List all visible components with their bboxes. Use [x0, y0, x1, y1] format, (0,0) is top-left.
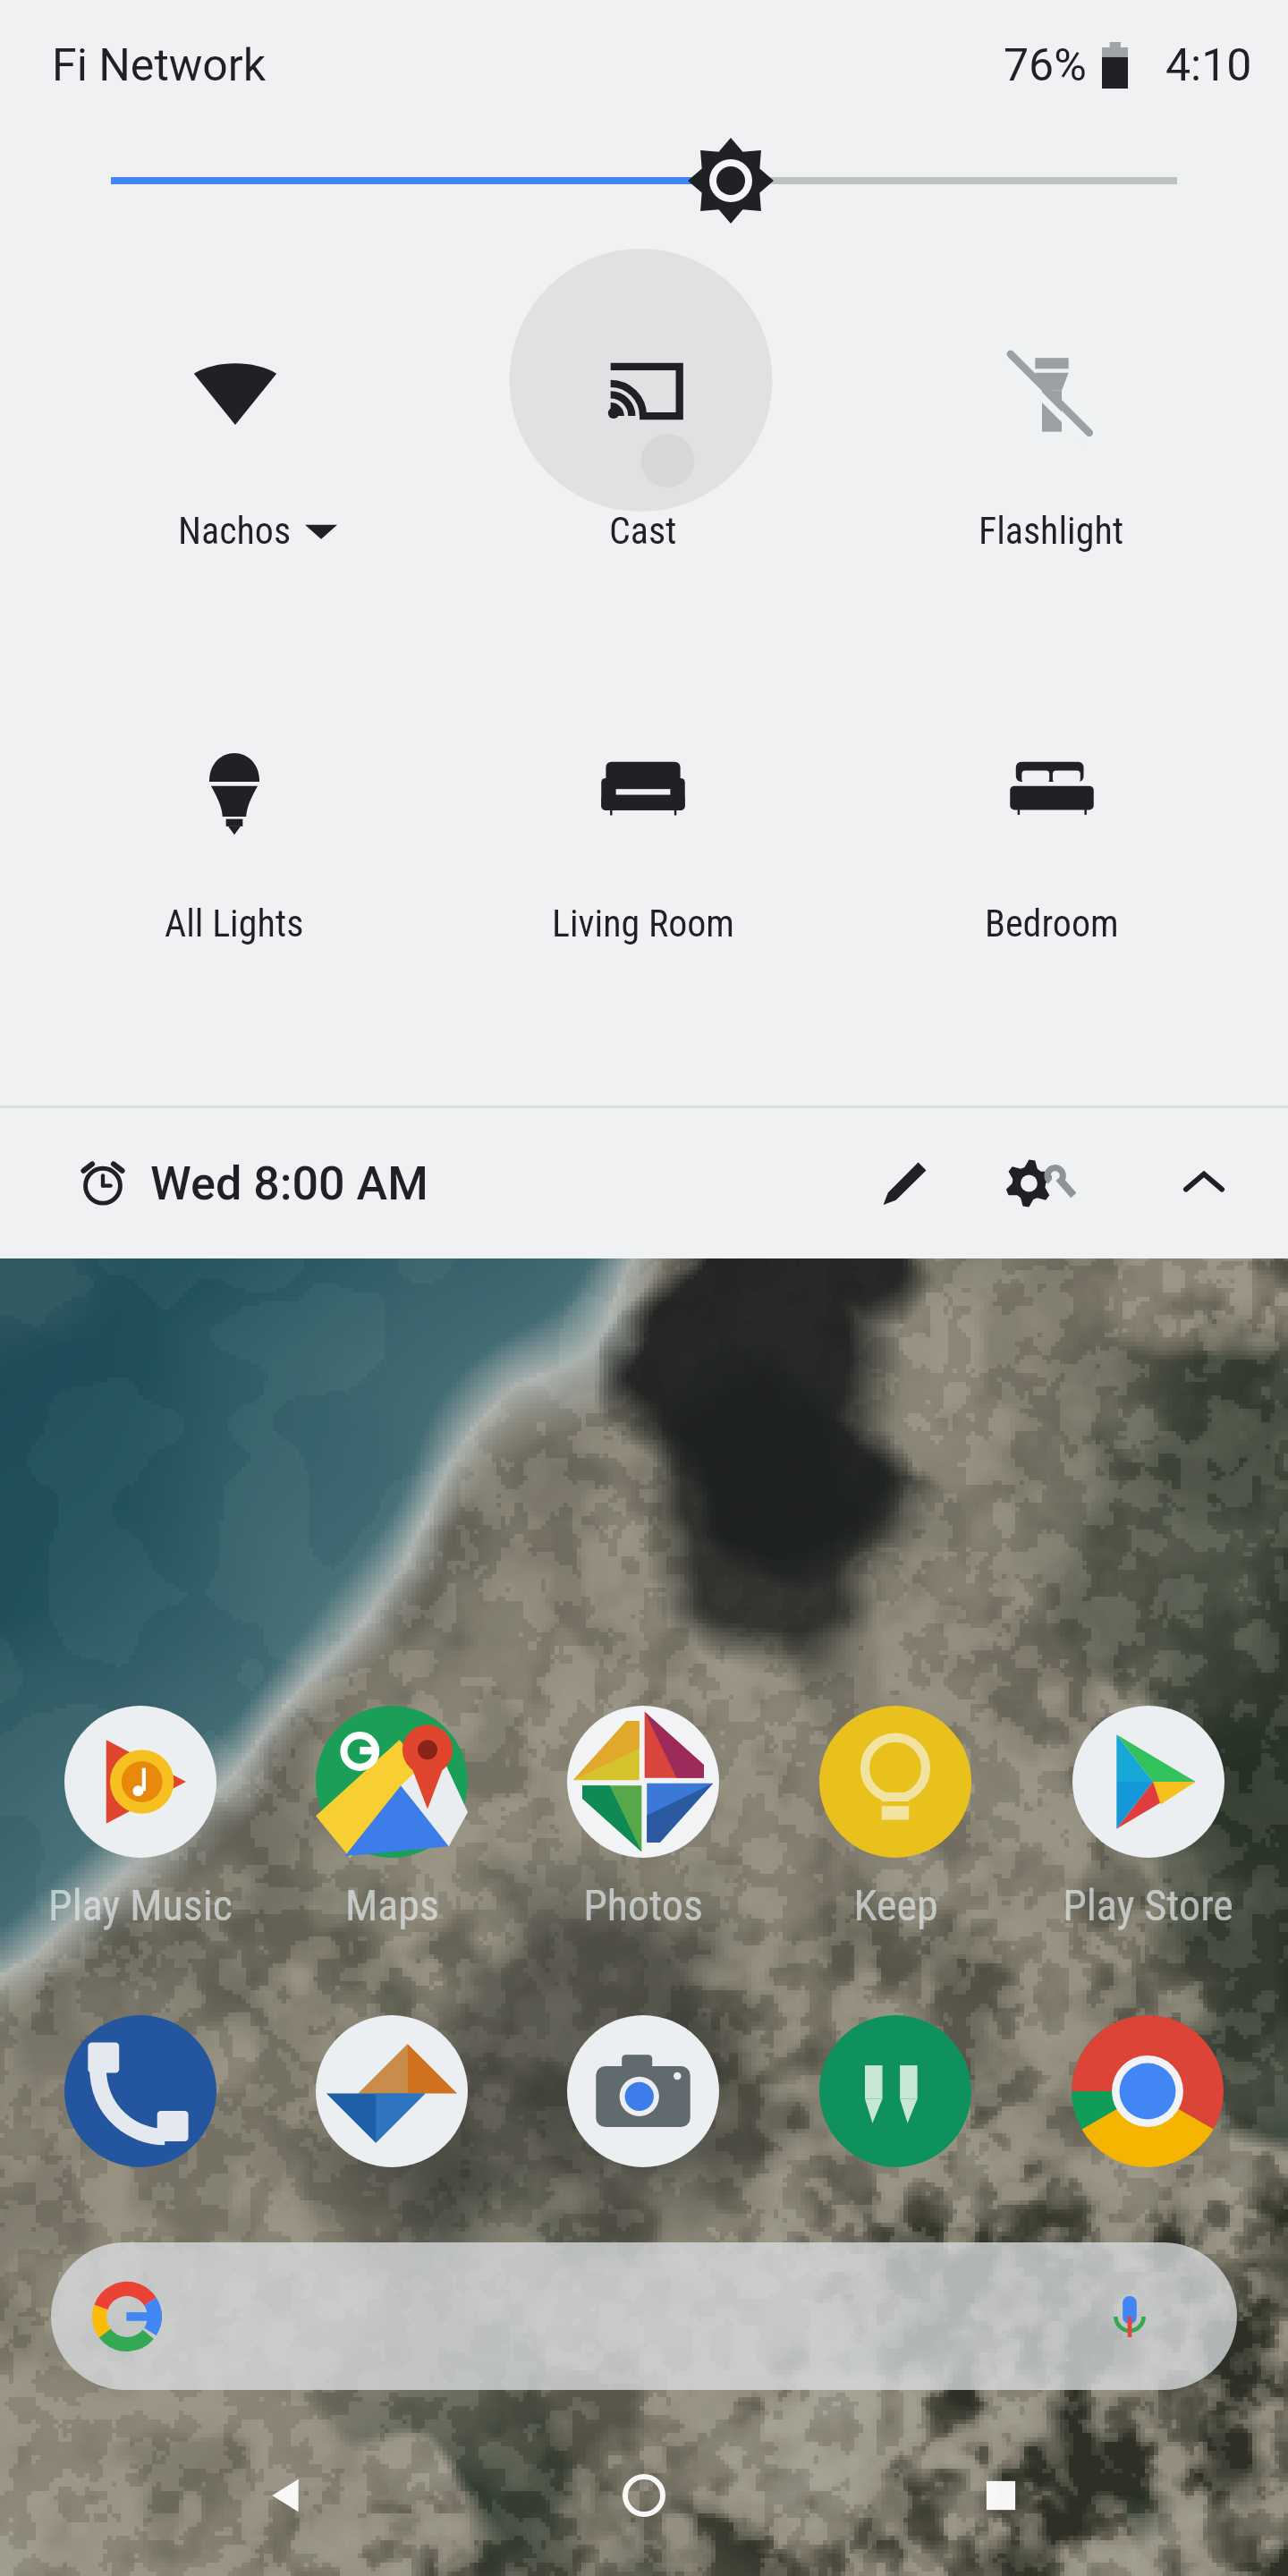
- staticText: Play Store: [1063, 1880, 1233, 1930]
- button[interactable]: All Lights: [30, 657, 438, 957]
- button[interactable]: Flashlight: [847, 264, 1256, 564]
- staticText: Nachos: [178, 509, 292, 553]
- staticText: Play Music: [48, 1880, 233, 1930]
- button[interactable]: Living Room: [438, 657, 847, 957]
- button[interactable]: Back: [256, 2464, 318, 2527]
- staticText: All Lights: [165, 902, 304, 945]
- staticText: Wed 8:00 AM: [150, 1157, 428, 1211]
- button[interactable]: Maps: [271, 1706, 513, 1930]
- staticText: Living Room: [552, 902, 734, 945]
- button[interactable]: Cast: [438, 264, 847, 564]
- button[interactable]: Hangouts: [819, 2015, 971, 2167]
- button[interactable]: Collapse: [1159, 1139, 1249, 1228]
- button[interactable]: Home: [613, 2464, 675, 2527]
- button[interactable]: Photos: [522, 1706, 764, 1930]
- button[interactable]: Camera: [567, 2015, 719, 2167]
- staticText: Flashlight: [979, 509, 1124, 553]
- staticText: Maps: [345, 1880, 439, 1930]
- staticText: Photos: [583, 1880, 703, 1930]
- staticText: Bedroom: [985, 902, 1119, 945]
- button[interactable]: Play Music: [20, 1706, 261, 1930]
- staticText: Fi Network: [52, 39, 267, 92]
- staticText: Cast: [609, 509, 677, 553]
- button[interactable]: Nachos: [30, 264, 438, 564]
- button[interactable]: Bedroom: [847, 657, 1256, 957]
- button[interactable]: Settings: [1005, 1125, 1122, 1241]
- staticText: Keep: [853, 1880, 938, 1930]
- button[interactable]: Drive: [316, 2015, 468, 2167]
- button[interactable]: Play Store: [1027, 1706, 1268, 1930]
- button[interactable]: Keep: [775, 1706, 1016, 1930]
- button[interactable]: Brightness: [0, 127, 1288, 234]
- button[interactable]: Phone: [64, 2015, 216, 2167]
- staticText: 76%: [1004, 39, 1087, 92]
- button[interactable]: Chrome: [1072, 2015, 1224, 2167]
- staticText: 4:10: [1165, 39, 1252, 92]
- button[interactable]: Recents: [970, 2464, 1032, 2527]
- button[interactable]: Edit tiles: [855, 1134, 953, 1233]
- button[interactable]: Google Search: [51, 2242, 1237, 2390]
